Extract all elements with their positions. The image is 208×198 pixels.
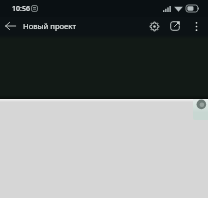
button[interactable]: Resize handle xyxy=(195,99,207,111)
button[interactable]: More options xyxy=(185,17,208,35)
button[interactable]: Back xyxy=(0,17,21,35)
button[interactable]: Export xyxy=(165,17,185,35)
staticText: 10:56 xyxy=(12,4,30,14)
button[interactable]: Settings xyxy=(144,17,165,35)
staticText: Новый проект xyxy=(23,21,77,31)
